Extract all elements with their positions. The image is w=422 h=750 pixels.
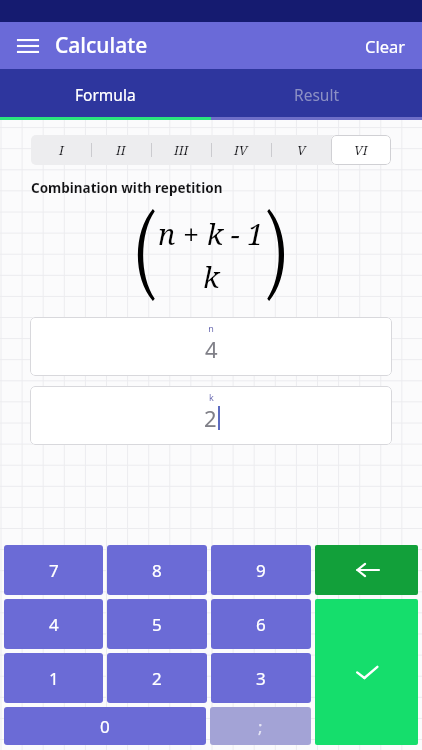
staticText: 4 bbox=[49, 613, 59, 636]
button[interactable]: IV bbox=[211, 135, 271, 165]
button[interactable]: V bbox=[271, 135, 331, 165]
staticText: 4 bbox=[205, 334, 218, 364]
staticText: ; bbox=[258, 715, 263, 738]
button[interactable]: k bbox=[30, 386, 392, 445]
staticText: 3 bbox=[256, 667, 266, 690]
staticText: n + k − 1 bbox=[158, 214, 264, 253]
staticText: 8 bbox=[152, 559, 162, 582]
staticText: VI bbox=[354, 141, 368, 159]
staticText: V bbox=[297, 141, 306, 159]
button[interactable]: 8 bbox=[107, 545, 207, 595]
button[interactable]: 7 bbox=[4, 545, 103, 595]
button[interactable]: Clear bbox=[349, 25, 422, 67]
button[interactable]: 0 bbox=[4, 707, 206, 745]
button[interactable]: VI bbox=[331, 135, 391, 165]
button[interactable]: Backspace bbox=[315, 545, 418, 595]
button[interactable]: n bbox=[30, 317, 392, 376]
button[interactable]: 3 bbox=[211, 653, 311, 703]
button[interactable]: Open navigation menu bbox=[8, 26, 48, 66]
staticText: Clear bbox=[365, 35, 406, 57]
staticText: 0 bbox=[100, 715, 110, 738]
button[interactable]: Result bbox=[211, 69, 422, 120]
staticText: 5 bbox=[152, 613, 162, 636]
staticText: IV bbox=[234, 141, 248, 159]
staticText: n bbox=[208, 322, 214, 334]
button[interactable]: Formula bbox=[0, 69, 211, 120]
button[interactable]: III bbox=[151, 135, 211, 165]
staticText: 7 bbox=[49, 559, 59, 582]
button[interactable]: 6 bbox=[211, 599, 311, 649]
staticText: Calculate bbox=[55, 31, 148, 60]
button[interactable]: 9 bbox=[211, 545, 311, 595]
staticText: 2 bbox=[152, 667, 162, 690]
button[interactable]: II bbox=[91, 135, 151, 165]
button[interactable]: 4 bbox=[4, 599, 103, 649]
staticText: 1 bbox=[49, 667, 59, 690]
button[interactable]: 1 bbox=[4, 653, 103, 703]
staticText: II bbox=[116, 141, 126, 159]
staticText: 6 bbox=[256, 613, 266, 636]
button[interactable]: 5 bbox=[107, 599, 207, 649]
staticText: 9 bbox=[256, 559, 266, 582]
staticText: III bbox=[174, 141, 189, 159]
staticText: Formula bbox=[75, 84, 136, 105]
staticText: k bbox=[203, 257, 220, 296]
button[interactable]: 2 bbox=[107, 653, 207, 703]
staticText: k bbox=[209, 391, 214, 403]
button[interactable]: Confirm bbox=[315, 599, 418, 745]
staticText: Combination with repetition bbox=[31, 179, 223, 197]
staticText: Result bbox=[294, 84, 339, 105]
staticText: I bbox=[59, 141, 64, 159]
button[interactable]: ; bbox=[210, 707, 311, 745]
button[interactable]: I bbox=[31, 135, 91, 165]
staticText: 2 bbox=[204, 403, 217, 433]
